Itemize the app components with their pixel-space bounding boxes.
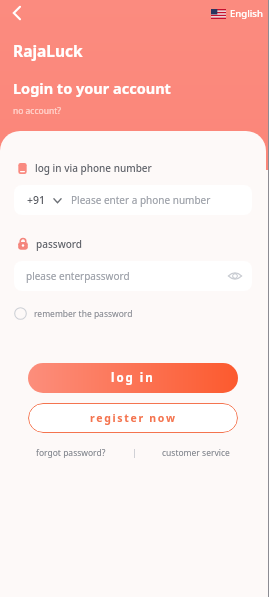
staticText: Please enter a phone number [71, 193, 211, 207]
button[interactable]: English [211, 7, 263, 20]
staticText: English [230, 7, 263, 20]
button[interactable]: +91 [14, 185, 252, 215]
button[interactable]: customer service [162, 447, 230, 459]
button[interactable]: log in [28, 363, 238, 393]
button[interactable]: please enterpassword [14, 261, 252, 291]
staticText: log in via phone number [35, 161, 152, 175]
button[interactable]: Back [4, 0, 30, 26]
button[interactable]: register now [28, 403, 238, 433]
button[interactable]: Show password [226, 267, 244, 285]
staticText: log in [111, 370, 155, 386]
staticText: | [132, 447, 137, 459]
staticText: password [36, 237, 83, 251]
button[interactable]: no account? [13, 105, 61, 117]
staticText: RajaLuck [13, 40, 83, 61]
staticText: Login to your account [13, 78, 171, 98]
staticText: register now [90, 411, 177, 425]
staticText: remember the password [34, 308, 133, 320]
staticText: please enterpassword [26, 269, 130, 283]
button[interactable]: forgot password? [36, 447, 106, 459]
button[interactable]: remember the password [14, 307, 133, 320]
staticText: +91 [27, 193, 46, 207]
